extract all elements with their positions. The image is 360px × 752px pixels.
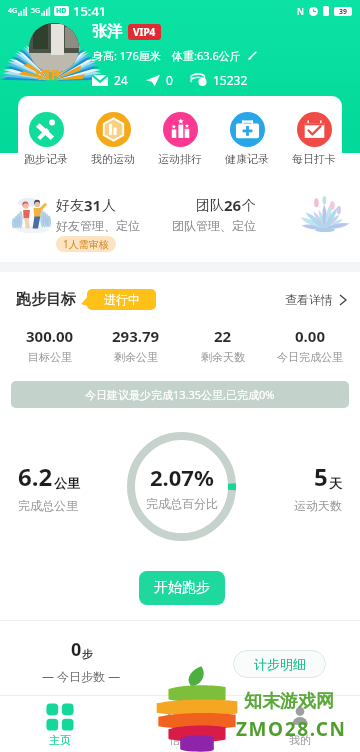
- staticText: 剩余天数: [201, 350, 245, 364]
- staticText: 运动排行: [158, 152, 202, 166]
- staticText: 31: [84, 195, 102, 215]
- staticText: 信息: [169, 733, 191, 747]
- staticText: 我的: [289, 733, 311, 747]
- staticText: 跑步目标: [16, 290, 76, 309]
- staticText: 步: [82, 647, 93, 661]
- staticText: 5G: [31, 6, 41, 16]
- button[interactable]: 信息: [120, 695, 240, 752]
- staticText: 天: [329, 475, 342, 491]
- staticText: 跑步记录: [24, 152, 68, 166]
- button[interactable]: Avatar: [29, 23, 79, 73]
- staticText: 团队: [196, 197, 224, 215]
- button[interactable]: 团队: [180, 186, 360, 256]
- staticText: 人: [102, 197, 116, 215]
- staticText: 0: [166, 72, 173, 88]
- staticText: 22: [214, 326, 232, 346]
- button[interactable]: Edit profile: [247, 50, 258, 61]
- staticText: 我的运动: [91, 152, 135, 166]
- staticText: 每日打卡: [292, 152, 336, 166]
- staticText: 个: [242, 197, 256, 215]
- staticText: 完成总公里: [18, 498, 78, 513]
- button[interactable]: 健康记录: [217, 112, 277, 166]
- staticText: 进行中: [104, 292, 140, 307]
- staticText: 目标公里: [28, 350, 72, 364]
- staticText: 26: [224, 195, 242, 215]
- staticText: 39: [339, 7, 348, 16]
- staticText: 身高: 176厘米: [92, 48, 161, 63]
- staticText: 24: [114, 72, 128, 88]
- staticText: 健康记录: [225, 152, 269, 166]
- staticText: 今日建议最少完成13.35公里,已完成0%: [85, 387, 275, 402]
- staticText: 主页: [49, 733, 71, 747]
- staticText: 知末游戏网: [244, 690, 334, 713]
- staticText: 0.00: [295, 326, 325, 346]
- button[interactable]: 每日打卡: [284, 112, 344, 166]
- staticText: 完成总百分比: [146, 496, 218, 511]
- staticText: 剩余公里: [114, 350, 158, 364]
- button[interactable]: 我的运动: [83, 112, 143, 166]
- staticText: N: [297, 5, 304, 17]
- staticText: 15:41: [73, 2, 107, 20]
- staticText: ZMO28.CN: [236, 716, 347, 742]
- staticText: 今日完成公里: [277, 350, 343, 364]
- button[interactable]: 查看详情: [285, 292, 346, 307]
- staticText: 体重:63.6公斤: [172, 48, 241, 63]
- staticText: 团队管理、定位: [172, 218, 256, 233]
- staticText: 张洋: [92, 22, 122, 41]
- staticText: 300.00: [26, 326, 74, 346]
- staticText: 开始跑步: [154, 579, 210, 597]
- staticText: 公里: [54, 475, 80, 491]
- button[interactable]: 开始跑步: [139, 571, 225, 605]
- staticText: VIP4: [133, 25, 156, 39]
- button[interactable]: 跑步记录: [16, 112, 76, 166]
- staticText: VIP: [35, 64, 60, 84]
- button[interactable]: 运动排行: [150, 112, 210, 166]
- staticText: 0: [71, 637, 82, 662]
- staticText: 运动天数: [294, 498, 342, 513]
- staticText: 6.2: [18, 460, 53, 493]
- staticText: 查看详情: [285, 292, 333, 307]
- staticText: — 今日步数 —: [42, 668, 121, 684]
- staticText: 293.79: [112, 326, 160, 346]
- staticText: 好友: [56, 197, 84, 215]
- button[interactable]: 计步明细: [233, 650, 326, 678]
- button[interactable]: 我的: [240, 695, 360, 752]
- button[interactable]: 好友: [0, 186, 180, 256]
- staticText: 2.07%: [150, 462, 214, 492]
- staticText: 好友管理、定位: [56, 218, 140, 233]
- staticText: 15232: [213, 72, 248, 88]
- staticText: 5: [314, 460, 328, 493]
- staticText: HD: [56, 6, 67, 16]
- staticText: 1人需审核: [63, 237, 109, 251]
- button[interactable]: 主页: [0, 695, 120, 752]
- staticText: 计步明细: [254, 656, 306, 672]
- staticText: 4G: [8, 6, 18, 16]
